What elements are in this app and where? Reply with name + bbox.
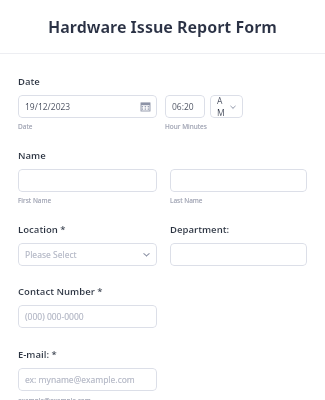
staticText: Last Name: [170, 196, 203, 205]
button[interactable]: Last Name: [170, 169, 307, 192]
button[interactable]: Department: [170, 243, 307, 266]
staticText: Contact Number *: [18, 285, 103, 298]
button[interactable]: E-mail: [18, 368, 157, 391]
staticText: (000) 000-0000: [25, 311, 84, 323]
staticText: 06:20: [172, 101, 194, 113]
staticText: Hardware Issue Report Form: [48, 16, 277, 38]
staticText: Name: [18, 149, 46, 162]
button[interactable]: AM or PM: [210, 95, 243, 118]
staticText: AM: [217, 95, 230, 118]
button[interactable]: First Name: [18, 169, 157, 192]
staticText: 19/12/2023: [25, 101, 71, 113]
button[interactable]: Contact Number: [18, 305, 157, 328]
staticText: Date: [18, 75, 40, 88]
staticText: First Name: [18, 196, 170, 205]
staticText: ex: myname@example.com: [25, 374, 135, 386]
staticText: E-mail: *: [18, 348, 57, 361]
staticText: Hour Minutes: [165, 122, 207, 131]
button[interactable]: Date: [18, 95, 157, 118]
button[interactable]: Hour and minutes: [165, 95, 205, 118]
staticText: Date: [18, 122, 165, 131]
button[interactable]: Location: [18, 243, 157, 266]
staticText: example@example.com: [18, 396, 91, 400]
staticText: Department:: [170, 223, 230, 236]
staticText: Please Select: [25, 249, 77, 261]
staticText: Location *: [18, 223, 66, 236]
